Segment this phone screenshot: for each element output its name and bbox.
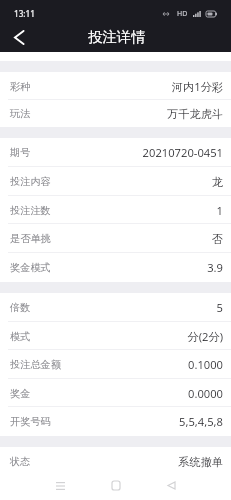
staticText: 0.1000 (188, 357, 223, 372)
staticText: 奖金模式 (10, 261, 51, 274)
staticText: 奖金 (10, 387, 31, 400)
staticText: 20210720-0451 (142, 145, 223, 160)
staticText: 是否单挑 (10, 232, 51, 245)
button[interactable]: 奖金 (0, 379, 231, 407)
button[interactable]: Back (151, 476, 191, 495)
button[interactable]: 奖金模式 (0, 253, 231, 282)
button[interactable]: 开奖号码 (0, 407, 231, 436)
button[interactable]: 彩种 (0, 72, 231, 100)
button[interactable]: 投注总金额 (0, 350, 231, 379)
staticText: 投注内容 (10, 175, 51, 188)
staticText: 彩种 (10, 80, 31, 93)
staticText: 5 (216, 300, 223, 315)
button[interactable]: 倍数 (0, 293, 231, 322)
button[interactable]: Recents (40, 476, 80, 495)
staticText: 万千龙虎斗 (167, 107, 223, 121)
staticText: 5,5,4,5,8 (179, 414, 223, 429)
button[interactable]: Back (0, 22, 37, 52)
button[interactable]: 模式 (0, 322, 231, 350)
staticText: 开奖号码 (10, 415, 51, 428)
staticText: 模式 (10, 330, 31, 343)
staticText: 河内1分彩 (171, 79, 223, 94)
button[interactable]: 是否单挑 (0, 224, 231, 253)
button[interactable]: Home (96, 476, 136, 495)
button[interactable]: 状态 (0, 447, 231, 476)
staticText: 投注总金额 (10, 358, 61, 371)
button[interactable]: 玩法 (0, 100, 231, 127)
staticText: 1 (216, 203, 223, 218)
staticText: 3.9 (207, 260, 223, 275)
staticText: 倍数 (10, 301, 31, 314)
staticText: 否 (211, 232, 223, 246)
staticText: 系统撤单 (178, 455, 223, 469)
staticText: 投注详情 (88, 28, 146, 46)
staticText: 期号 (10, 146, 31, 159)
staticText: HD (177, 9, 188, 19)
staticText: 龙 (211, 175, 223, 189)
staticText: 0.0000 (188, 386, 223, 401)
staticText: 13:11 (14, 8, 35, 19)
button[interactable]: 投注内容 (0, 167, 231, 196)
staticText: 投注注数 (10, 204, 51, 217)
staticText: 分(2分) (187, 329, 223, 344)
button[interactable]: 投注注数 (0, 196, 231, 224)
staticText: 状态 (10, 455, 31, 468)
button[interactable]: 期号 (0, 138, 231, 167)
staticText: 玩法 (10, 107, 31, 120)
